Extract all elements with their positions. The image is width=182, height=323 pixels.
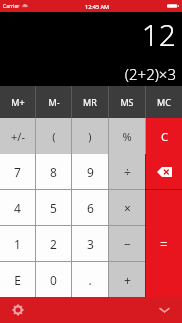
- staticText: 0: [50, 272, 57, 288]
- staticText: E: [14, 272, 21, 288]
- staticText: =: [160, 235, 168, 253]
- staticText: M-: [48, 96, 60, 108]
- button[interactable]: MS: [109, 86, 145, 118]
- button[interactable]: +: [109, 262, 145, 297]
- staticText: −: [124, 236, 131, 252]
- staticText: 12: [141, 14, 176, 55]
- button[interactable]: +/-: [0, 118, 35, 154]
- staticText: M+: [11, 96, 25, 108]
- button[interactable]: Collapse: [156, 302, 172, 318]
- staticText: 7: [14, 164, 21, 180]
- button[interactable]: Settings: [10, 302, 26, 318]
- staticText: MR: [83, 96, 97, 108]
- staticText: .: [88, 272, 92, 288]
- staticText: 6: [87, 200, 94, 216]
- button[interactable]: (: [36, 118, 71, 154]
- staticText: 8: [50, 164, 57, 180]
- button[interactable]: −: [109, 226, 145, 261]
- button[interactable]: 5: [36, 190, 71, 225]
- button[interactable]: 9: [72, 154, 108, 189]
- button[interactable]: .: [72, 262, 108, 297]
- staticText: C: [161, 129, 168, 144]
- staticText: 9: [87, 164, 94, 180]
- button[interactable]: M+: [0, 86, 35, 118]
- staticText: 1: [14, 236, 21, 252]
- button[interactable]: ×: [109, 190, 145, 225]
- button[interactable]: MR: [72, 86, 108, 118]
- staticText: %: [122, 129, 132, 144]
- staticText: MC: [157, 96, 171, 108]
- button[interactable]: Backspace: [146, 154, 182, 189]
- button[interactable]: C: [146, 118, 182, 154]
- button[interactable]: 3: [72, 226, 108, 261]
- button[interactable]: ): [72, 118, 108, 154]
- button[interactable]: 1: [0, 226, 35, 261]
- button[interactable]: 7: [0, 154, 35, 189]
- staticText: +: [124, 272, 131, 288]
- button[interactable]: E: [0, 262, 35, 297]
- staticText: +/-: [11, 129, 25, 144]
- button[interactable]: 6: [72, 190, 108, 225]
- staticText: 4: [14, 200, 21, 216]
- staticText: (: [52, 129, 56, 144]
- button[interactable]: 0: [36, 262, 71, 297]
- button[interactable]: 2: [36, 226, 71, 261]
- staticText: MS: [120, 96, 134, 108]
- staticText: ): [88, 129, 92, 144]
- staticText: ÷: [124, 164, 131, 180]
- button[interactable]: 4: [0, 190, 35, 225]
- staticText: 12:45 AM: [85, 3, 110, 10]
- staticText: 5: [50, 200, 57, 216]
- button[interactable]: =: [146, 190, 182, 297]
- button[interactable]: 8: [36, 154, 71, 189]
- staticText: 2: [50, 236, 57, 252]
- button[interactable]: ÷: [109, 154, 145, 189]
- button[interactable]: %: [109, 118, 145, 154]
- staticText: 3: [87, 236, 94, 252]
- staticText: ×: [124, 200, 131, 216]
- staticText: (2+2)×3: [124, 64, 176, 84]
- button[interactable]: M-: [36, 86, 71, 118]
- button[interactable]: MC: [146, 86, 182, 118]
- staticText: Carrier: [3, 3, 20, 10]
